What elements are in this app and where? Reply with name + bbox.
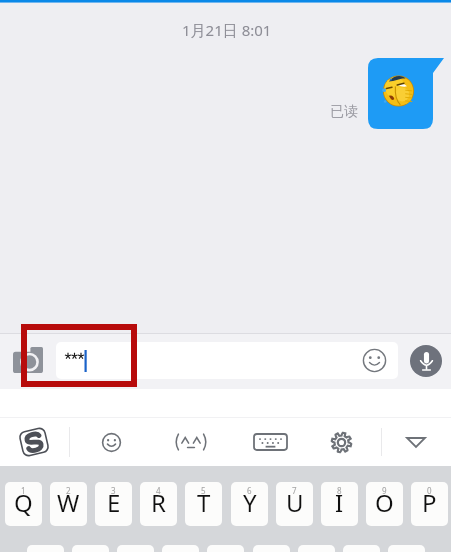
button[interactable]: 6 [231, 482, 268, 526]
staticText: O [375, 486, 394, 519]
button[interactable]: H [253, 545, 290, 552]
staticText: R [151, 486, 166, 519]
button[interactable]: L [388, 545, 425, 552]
button[interactable]: Camera [9, 345, 47, 375]
button[interactable]: 3 [95, 482, 132, 526]
button[interactable]: S [72, 545, 109, 552]
button[interactable]: 2 [50, 482, 87, 526]
staticText: Q [14, 486, 33, 519]
staticText: 9 [382, 485, 387, 496]
staticText: 1 [21, 485, 26, 496]
staticText: P [422, 486, 437, 519]
button[interactable]: Voice input [410, 345, 442, 377]
button[interactable]: 7 [276, 482, 313, 526]
staticText: 8 [337, 485, 342, 496]
button[interactable]: K [343, 545, 380, 552]
staticText: E [107, 486, 121, 519]
staticText: W [57, 486, 80, 519]
button[interactable]: Sogou input [16, 424, 52, 460]
staticText: 7 [292, 485, 297, 496]
button[interactable]: 8 [321, 482, 358, 526]
button[interactable]: Settings [325, 426, 357, 458]
button[interactable]: G [207, 545, 244, 552]
button[interactable]: 4 [140, 482, 177, 526]
staticText: 已读 [330, 103, 358, 121]
button[interactable]: Emoji [95, 426, 127, 458]
staticText: 2 [66, 485, 71, 496]
button[interactable]: J [298, 545, 335, 552]
staticText: T [197, 486, 211, 519]
staticText: I [335, 486, 344, 519]
button[interactable]: Keyboard layout [252, 426, 289, 458]
button[interactable]: Hide keyboard [400, 426, 432, 458]
staticText: 6 [247, 485, 252, 496]
staticText: 4 [156, 485, 161, 496]
staticText: 3 [111, 485, 116, 496]
staticText: 5 [201, 485, 206, 496]
staticText: Y [243, 486, 257, 519]
button[interactable]: 1 [5, 482, 42, 526]
button[interactable]: 5 [185, 482, 222, 526]
staticText: 1月21日 8:01 [182, 20, 272, 40]
button[interactable]: 9 [366, 482, 403, 526]
button[interactable]: 0 [411, 482, 448, 526]
button[interactable] [56, 342, 398, 379]
button[interactable]: Kaomoji [165, 426, 217, 458]
button[interactable]: F [162, 545, 199, 552]
button[interactable]: D [117, 545, 154, 552]
button[interactable]: A [27, 545, 64, 552]
staticText: U [286, 486, 304, 519]
staticText: 0 [427, 485, 432, 496]
